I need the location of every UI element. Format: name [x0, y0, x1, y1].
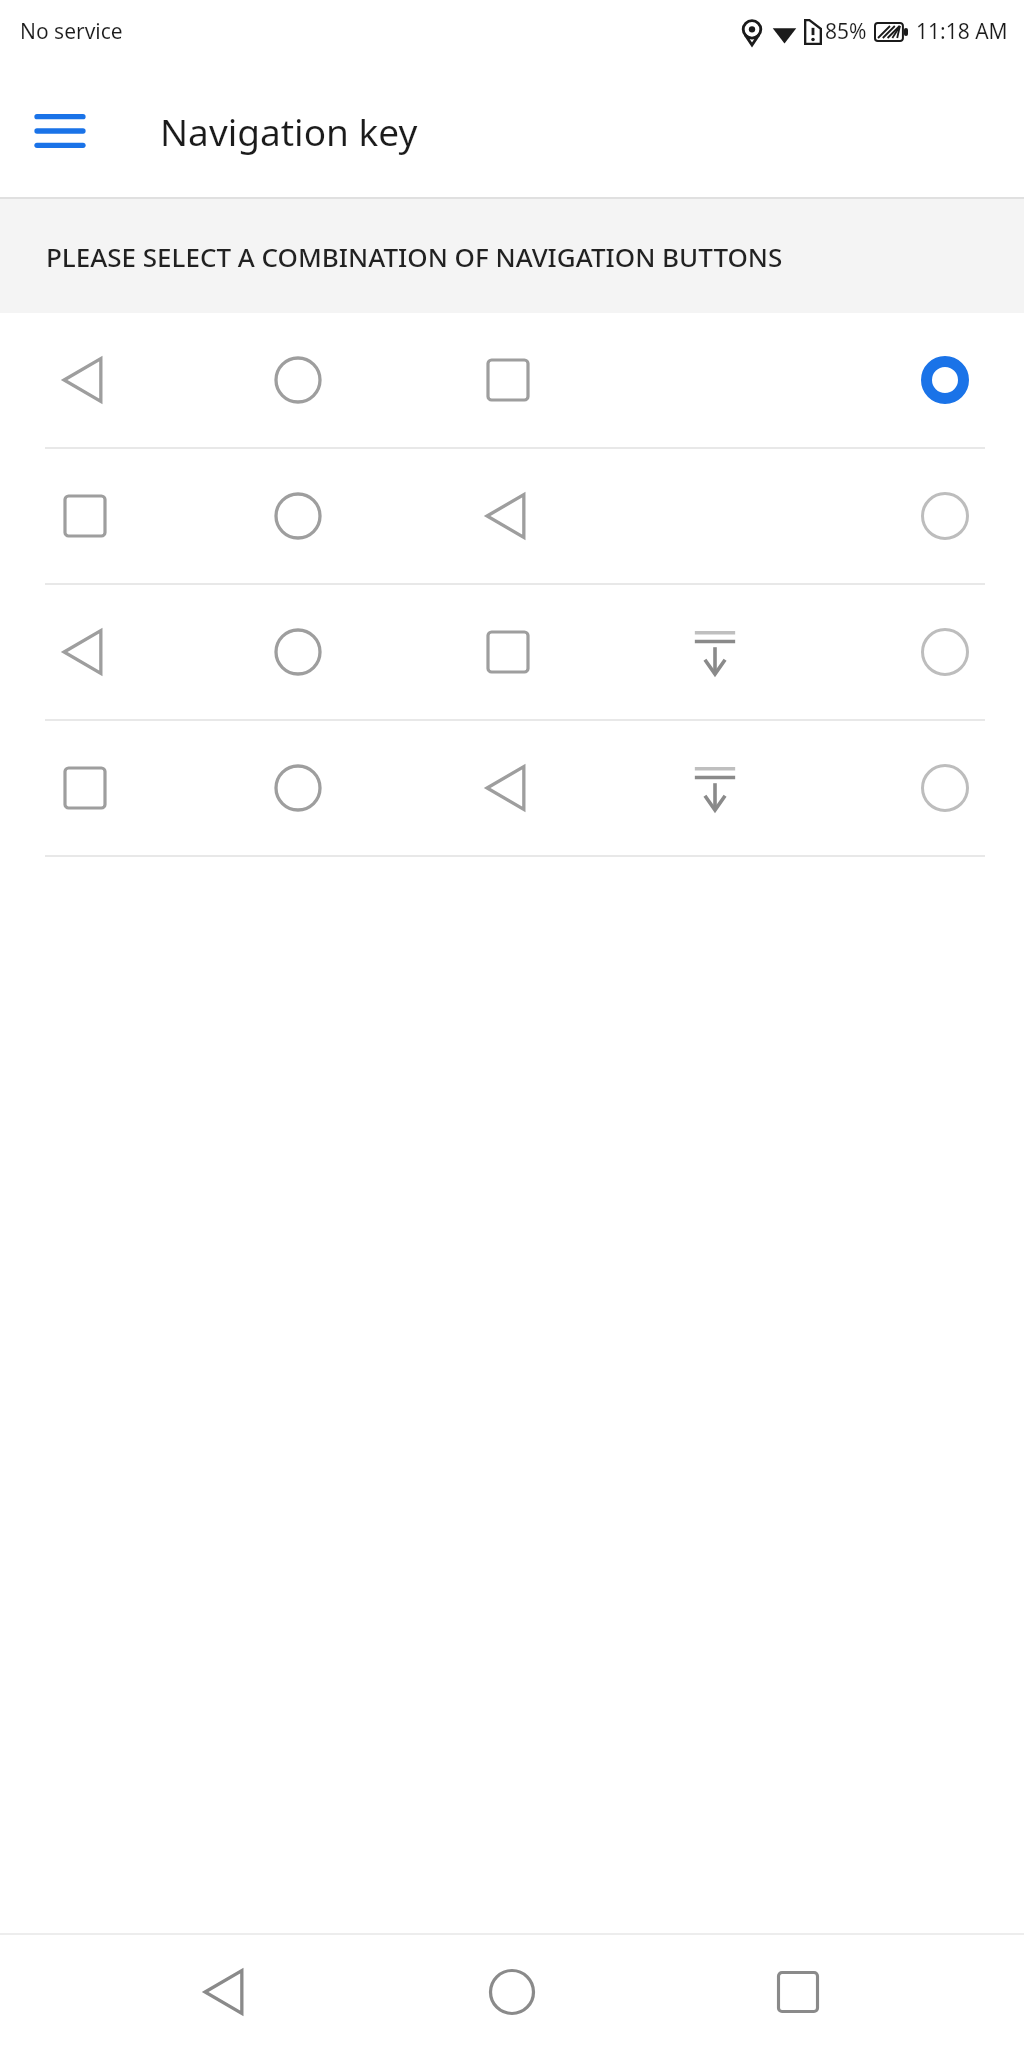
button[interactable]: Back — [166, 1935, 286, 2048]
button[interactable]: Menu — [24, 95, 96, 167]
button[interactable]: Navigation button combination option — [0, 313, 1024, 447]
button[interactable]: Navigation button combination option — [0, 449, 1024, 583]
button[interactable]: Home — [452, 1935, 572, 2048]
button[interactable]: Navigation button combination option — [0, 721, 1024, 855]
staticText: Navigation key — [160, 106, 418, 156]
staticText: PLEASE SELECT A COMBINATION OF NAVIGATIO… — [46, 239, 783, 274]
staticText: No service — [20, 17, 123, 46]
staticText: 11:18 AM — [916, 17, 1008, 46]
button[interactable]: Recent apps — [738, 1935, 858, 2048]
button[interactable]: Navigation button combination option — [0, 585, 1024, 719]
staticText: 85% — [825, 17, 867, 46]
